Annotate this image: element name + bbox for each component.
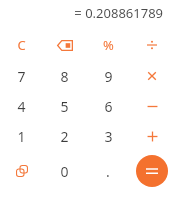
button[interactable]: Equals	[130, 151, 174, 191]
button[interactable]: Divide	[130, 29, 174, 61]
button[interactable]: Multiply	[130, 61, 174, 91]
button[interactable]: Backspace	[43, 29, 86, 61]
staticText: 3	[104, 127, 113, 146]
button[interactable]: Plus	[130, 121, 174, 151]
button[interactable]: 2	[43, 121, 86, 151]
button[interactable]: Percent	[86, 29, 130, 61]
button[interactable]: 4	[0, 91, 43, 121]
staticText: %	[103, 36, 114, 54]
staticText: .	[106, 162, 110, 181]
staticText: 5	[60, 97, 69, 116]
button[interactable]: 1	[0, 121, 43, 151]
staticText: 1	[17, 127, 26, 146]
staticText: C	[17, 36, 26, 54]
button[interactable]: 5	[43, 91, 86, 121]
button[interactable]: 9	[86, 61, 130, 91]
button[interactable]: Clear	[0, 29, 43, 61]
button[interactable]: 0	[43, 151, 86, 191]
staticText: 7	[17, 67, 26, 86]
staticText: 8	[60, 67, 69, 86]
staticText: 4	[17, 97, 26, 116]
staticText: = 0.208861789	[74, 4, 163, 22]
button[interactable]: Equals	[136, 155, 168, 187]
staticText: 0	[60, 162, 69, 181]
button[interactable]: Scientific functions	[0, 151, 43, 191]
button[interactable]: 6	[86, 91, 130, 121]
button[interactable]: Decimal point	[86, 151, 130, 191]
button[interactable]: 3	[86, 121, 130, 151]
button[interactable]: 8	[43, 61, 86, 91]
staticText: 2	[60, 127, 69, 146]
staticText: 6	[104, 97, 113, 116]
button[interactable]: 7	[0, 61, 43, 91]
staticText: 9	[104, 67, 113, 86]
button[interactable]: Minus	[130, 91, 174, 121]
